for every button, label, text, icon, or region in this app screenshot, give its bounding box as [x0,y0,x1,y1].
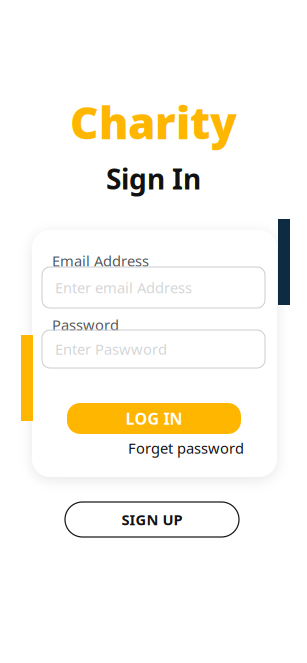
staticText: Sign In [106,160,201,197]
staticText: Enter email Address [55,278,192,297]
button[interactable]: Enter Paswword [42,330,265,368]
staticText: Password [52,315,119,334]
button[interactable]: SIGN UP [65,502,239,537]
button[interactable]: LOG IN [67,403,241,434]
button[interactable]: Forget password [42,440,244,456]
staticText: Enter Paswword [55,339,167,359]
staticText: Charity [70,93,237,151]
button[interactable]: Enter email Address [42,267,265,308]
staticText: SIGN UP [121,510,182,529]
staticText: Forget password [128,438,244,458]
staticText: LOG IN [125,408,182,429]
staticText: Email Address [52,251,149,270]
